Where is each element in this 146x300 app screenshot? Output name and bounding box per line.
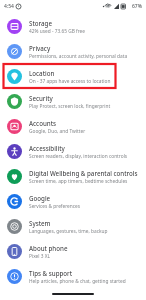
staticText: Location (29, 69, 55, 77)
staticText: Languages, gestures, time, backup (29, 228, 108, 235)
button[interactable]: Tips & support (0, 264, 146, 289)
button[interactable]: System (0, 214, 146, 239)
staticText: Permissions, account activity, personal … (29, 53, 128, 60)
staticText: Security (29, 94, 53, 102)
staticText: Play Protect, screen lock, fingerprint (29, 103, 111, 110)
staticText: Services & preferences (29, 203, 81, 210)
staticText: Accessibility (29, 144, 65, 152)
staticText: Help articles, phone & chat, getting sta… (29, 278, 126, 285)
button[interactable]: Storage (0, 14, 146, 39)
staticText: Screen time, app timers, bedtime schedul… (29, 178, 128, 185)
button[interactable]: Location (0, 64, 146, 89)
staticText: System (29, 219, 51, 227)
staticText: 67% (132, 3, 142, 10)
staticText: On - 37 apps have access to location (29, 78, 111, 85)
button[interactable]: Accounts (0, 114, 146, 139)
button[interactable]: About phone (0, 239, 146, 264)
staticText: Google, Duo, and Twitter (29, 128, 86, 135)
staticText: 4:54 (4, 3, 14, 10)
button[interactable]: Privacy (0, 39, 146, 64)
staticText: Tips & support (29, 269, 73, 277)
button[interactable]: Digital Wellbeing & parental controls (0, 164, 146, 189)
staticText: Pixel 3 XL (29, 253, 51, 260)
staticText: Privacy (29, 44, 51, 52)
staticText: Storage (29, 19, 52, 27)
staticText: 42% used - 73.65 GB free (29, 28, 85, 35)
button[interactable]: Google (0, 189, 146, 214)
staticText: Accounts (29, 119, 57, 127)
button[interactable]: Security (0, 89, 146, 114)
staticText: Screen readers, display, interaction con… (29, 153, 128, 160)
staticText: About phone (29, 244, 68, 252)
staticText: Digital Wellbeing & parental controls (29, 169, 138, 177)
button[interactable]: Accessibility (0, 139, 146, 164)
staticText: Google (29, 194, 51, 202)
